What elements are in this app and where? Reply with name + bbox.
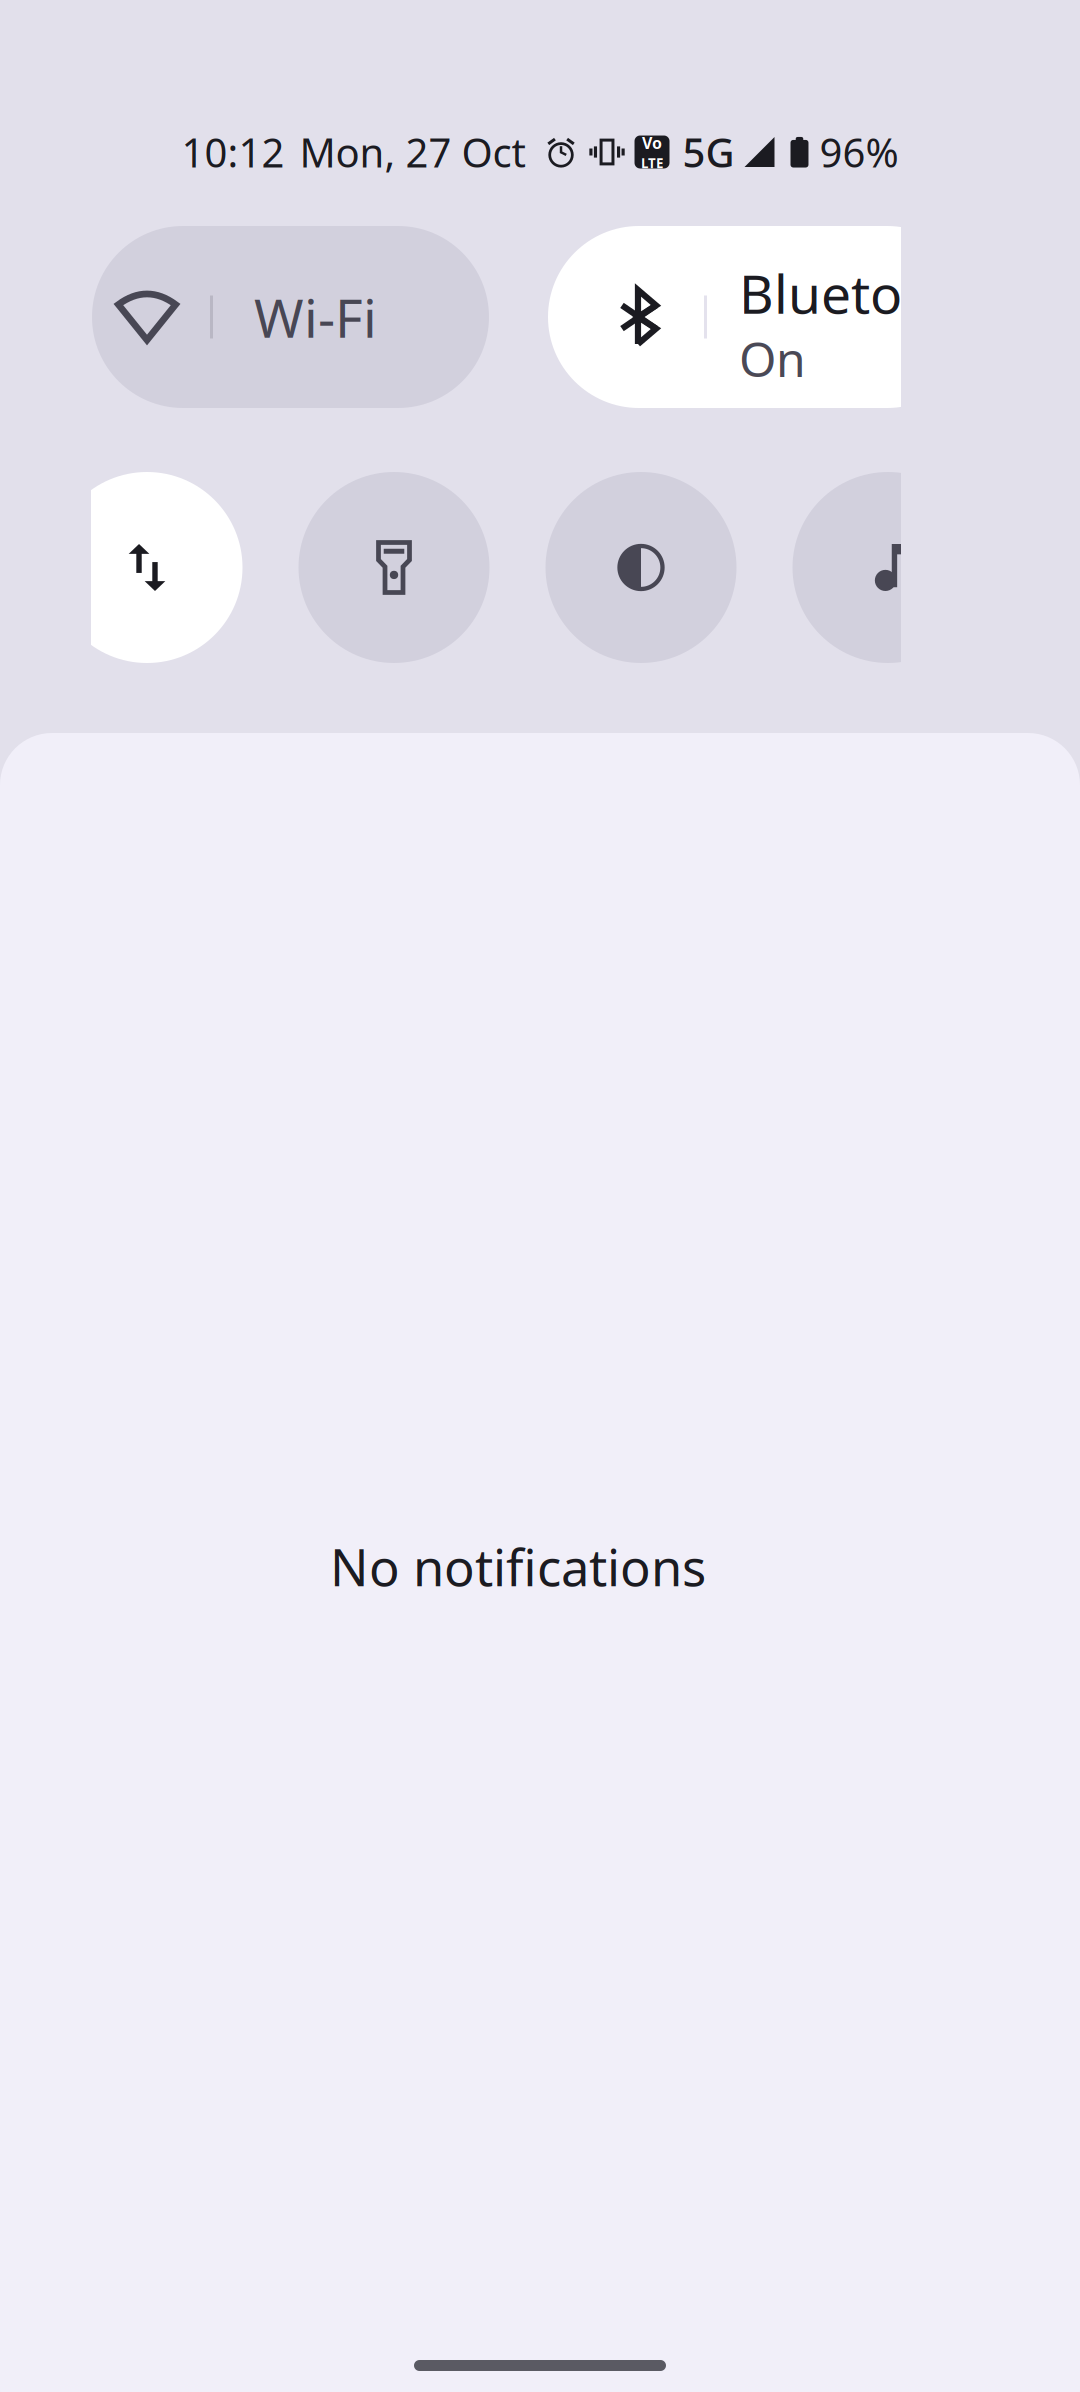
button[interactable]: Flashlight [298, 472, 489, 663]
button[interactable]: Wi-Fi [92, 226, 489, 408]
button[interactable]: Media [792, 472, 983, 663]
button[interactable]: Home [414, 2360, 666, 2371]
staticText: 10:12 [181, 125, 284, 178]
button[interactable]: Dark theme [545, 472, 736, 663]
staticText: Mon, 27 Oct [299, 125, 525, 178]
button[interactable]: Bluetooth [548, 226, 978, 408]
staticText: No notifications [330, 1533, 706, 1600]
button[interactable]: Mobile data [51, 472, 242, 663]
staticText: LTE [641, 154, 663, 172]
staticText: Vo [642, 132, 662, 153]
staticText: Bluetooth [739, 258, 986, 328]
staticText: 96% [819, 125, 898, 178]
staticText: On [739, 326, 806, 390]
staticText: 5G [682, 125, 734, 178]
staticText: Wi-Fi [254, 282, 377, 352]
